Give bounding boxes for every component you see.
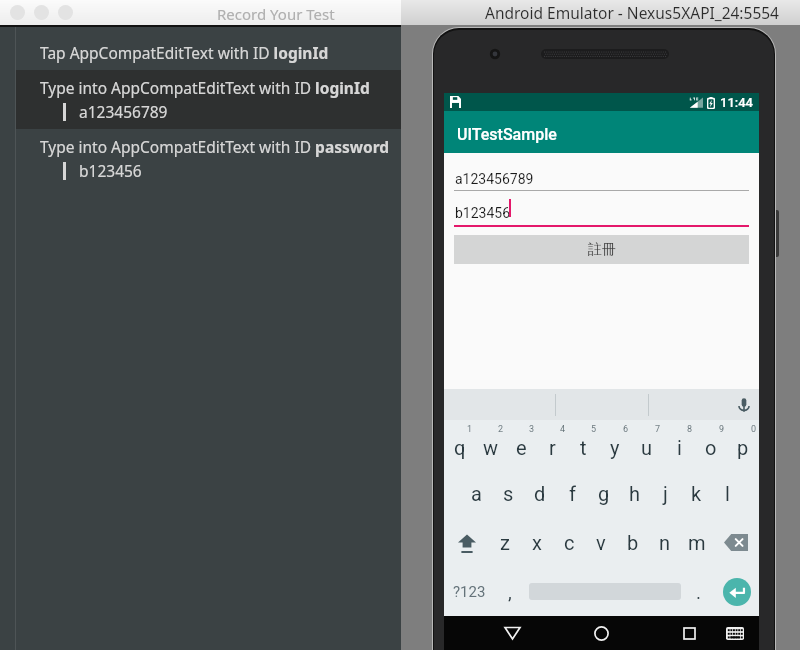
staticText: Type into AppCompatEditText with ID pass… bbox=[40, 136, 390, 157]
button[interactable]: Voice input bbox=[735, 396, 753, 414]
button[interactable]: 5 bbox=[568, 420, 599, 469]
button[interactable]: j bbox=[650, 469, 681, 518]
button[interactable]: m bbox=[681, 518, 713, 567]
staticText: c bbox=[564, 531, 575, 554]
staticText: a123456789 bbox=[79, 101, 168, 122]
staticText: Type into AppCompatEditText with ID logi… bbox=[40, 77, 370, 98]
staticText: m bbox=[688, 531, 706, 554]
button[interactable]: Enter bbox=[714, 567, 759, 616]
staticText: q bbox=[454, 436, 466, 459]
staticText: r bbox=[549, 436, 556, 459]
button[interactable]: a bbox=[460, 469, 492, 518]
staticText: b bbox=[627, 531, 639, 554]
button[interactable]: Tap AppCompatEditText with ID loginId bbox=[16, 33, 800, 70]
staticText: u bbox=[641, 436, 653, 459]
button[interactable]: Window button bbox=[58, 5, 73, 20]
button[interactable]: , bbox=[494, 567, 526, 616]
staticText: 3 bbox=[529, 424, 535, 435]
staticText: g bbox=[598, 482, 610, 505]
button[interactable]: Shift bbox=[444, 518, 489, 567]
button[interactable]: Home bbox=[585, 617, 617, 649]
button[interactable]: k bbox=[681, 469, 712, 518]
button[interactable]: l bbox=[712, 469, 743, 518]
staticText: 2 bbox=[498, 424, 504, 435]
button[interactable]: 4 bbox=[537, 420, 568, 469]
button[interactable]: 0 bbox=[727, 420, 759, 469]
staticText: d bbox=[534, 482, 546, 505]
button[interactable]: . bbox=[684, 567, 714, 616]
staticText: h bbox=[629, 482, 641, 505]
button[interactable]: 1 bbox=[444, 420, 475, 469]
staticText: k bbox=[691, 482, 702, 505]
staticText: ?123 bbox=[453, 583, 486, 601]
staticText: s bbox=[503, 482, 514, 505]
staticText: Record Your Test bbox=[217, 4, 335, 24]
button[interactable]: h bbox=[619, 469, 650, 518]
staticText: 9 bbox=[719, 424, 725, 435]
staticText: j bbox=[663, 482, 668, 505]
staticText: 7 bbox=[655, 424, 661, 435]
staticText: e bbox=[516, 436, 527, 459]
button[interactable]: s bbox=[492, 469, 524, 518]
button[interactable]: c bbox=[553, 518, 585, 567]
button[interactable]: Space bbox=[526, 567, 684, 616]
button[interactable]: 6 bbox=[599, 420, 631, 469]
button[interactable]: b bbox=[617, 518, 649, 567]
staticText: UITestSample bbox=[457, 125, 557, 144]
staticText: x bbox=[532, 531, 542, 554]
button[interactable]: 註冊 bbox=[454, 235, 749, 264]
button[interactable]: Switch keyboard bbox=[719, 617, 751, 649]
staticText: a123456789 bbox=[455, 171, 534, 187]
staticText: a bbox=[471, 482, 482, 505]
button[interactable]: 9 bbox=[695, 420, 727, 469]
staticText: 11:44 bbox=[720, 95, 753, 110]
staticText: 0 bbox=[751, 424, 757, 435]
button[interactable]: Back bbox=[496, 617, 528, 649]
button[interactable]: Type into AppCompatEditText with ID pass… bbox=[16, 129, 800, 188]
staticText: 8 bbox=[687, 424, 693, 435]
button[interactable]: 7 bbox=[631, 420, 663, 469]
button[interactable]: Recents bbox=[673, 617, 705, 649]
staticText: i bbox=[677, 436, 682, 459]
button[interactable]: Type into AppCompatEditText with ID logi… bbox=[16, 70, 800, 129]
staticText: z bbox=[500, 531, 510, 554]
button[interactable]: z bbox=[489, 518, 521, 567]
staticText: 註冊 bbox=[588, 241, 616, 259]
staticText: b123456 bbox=[455, 205, 511, 221]
staticText: p bbox=[737, 436, 749, 459]
staticText: Android Emulator - Nexus5XAPI_24:5554 bbox=[485, 2, 779, 23]
staticText: n bbox=[659, 531, 671, 554]
button[interactable]: 3 bbox=[506, 420, 537, 469]
staticText: 1 bbox=[467, 424, 473, 435]
button[interactable]: ?123 bbox=[444, 567, 494, 616]
staticText: l bbox=[725, 482, 730, 505]
staticText: 5 bbox=[591, 424, 597, 435]
staticText: , bbox=[508, 581, 512, 603]
staticText: y bbox=[610, 436, 620, 459]
button[interactable]: v bbox=[585, 518, 617, 567]
button[interactable]: d bbox=[524, 469, 556, 518]
staticText: t bbox=[580, 436, 587, 459]
staticText: v bbox=[596, 531, 606, 554]
staticText: 6 bbox=[623, 424, 629, 435]
button[interactable]: Window button bbox=[34, 5, 49, 20]
button[interactable]: x bbox=[521, 518, 553, 567]
staticText: b123456 bbox=[79, 160, 142, 181]
button[interactable]: 2 bbox=[475, 420, 506, 469]
button[interactable]: Window button bbox=[10, 5, 25, 20]
staticText: o bbox=[705, 436, 717, 459]
button[interactable]: f bbox=[556, 469, 588, 518]
staticText: w bbox=[483, 436, 499, 459]
button[interactable]: Backspace bbox=[713, 518, 759, 567]
staticText: . bbox=[696, 581, 702, 603]
button[interactable]: g bbox=[588, 469, 619, 518]
button[interactable]: 8 bbox=[663, 420, 695, 469]
staticText: 4 bbox=[560, 424, 566, 435]
button[interactable]: n bbox=[649, 518, 681, 567]
staticText: Tap AppCompatEditText with ID loginId bbox=[40, 42, 329, 63]
staticText: f bbox=[569, 482, 576, 505]
